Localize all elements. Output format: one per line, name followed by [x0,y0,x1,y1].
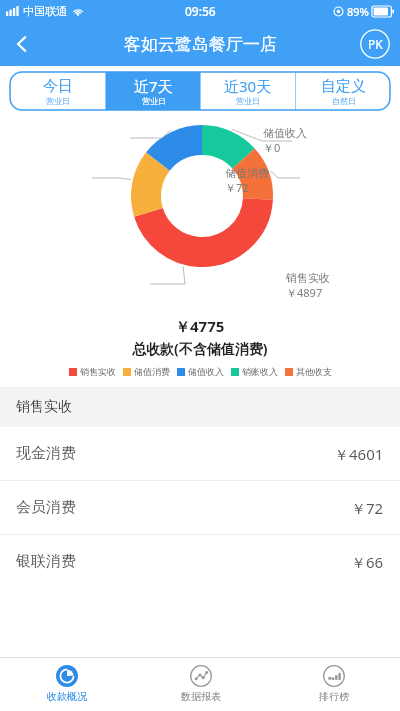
staticText: ￥66 [351,552,384,572]
button[interactable]: Profile PK [360,29,390,59]
staticText: 储值消费 [134,366,170,377]
staticText: 客如云鹭岛餐厅一店 [124,34,277,55]
button[interactable]: 近30天 [201,72,295,110]
staticText: 会员消费 [16,498,76,517]
button[interactable]: 现金消费 [0,427,400,480]
staticText: 银联消费 [16,552,76,571]
button[interactable]: 自定义 [296,72,390,110]
staticText: 其他收支 [296,366,332,377]
button[interactable]: 今日 [10,72,105,110]
staticText: 排行榜 [319,690,349,703]
staticText: 销售实收 [286,271,330,285]
staticText: 自然日 [332,96,356,106]
staticText: 储值收入 [263,126,307,140]
staticText: PK [368,36,383,52]
staticText: ￥4897 [286,285,323,300]
staticText: 近30天 [224,76,272,96]
staticText: ￥4775 [175,316,225,336]
staticText: 销售实收 [16,398,72,416]
staticText: 收款概况 [47,690,87,703]
staticText: 中国联通 [23,4,67,18]
staticText: ￥72 [225,180,249,195]
staticText: 销售实收 [80,366,116,377]
staticText: ￥0 [263,140,281,155]
button[interactable]: 会员消费 [0,481,400,534]
staticText: 09:56 [185,3,216,19]
button[interactable]: 收款概况 [0,657,134,711]
button[interactable]: 排行榜 [267,657,400,711]
staticText: 89% [347,4,369,19]
staticText: 数据报表 [181,690,221,703]
staticText: ￥72 [351,498,384,518]
button[interactable]: 银联消费 [0,535,400,588]
staticText: 营业日 [46,96,70,106]
staticText: 储值收入 [188,366,224,377]
staticText: 营业日 [142,96,166,106]
staticText: 今日 [43,77,73,96]
staticText: 总收款(不含储值消费) [132,339,268,358]
button[interactable]: Back [0,22,44,66]
staticText: 储值消费 [225,166,269,180]
button[interactable]: 数据报表 [134,657,267,711]
staticText: 现金消费 [16,444,76,463]
button[interactable]: 近7天 [106,72,200,110]
staticText: 近7天 [134,76,173,96]
staticText: 自定义 [321,77,366,96]
staticText: 营业日 [236,96,260,106]
staticText: ￥4601 [334,444,384,464]
staticText: 销账收入 [242,366,278,377]
